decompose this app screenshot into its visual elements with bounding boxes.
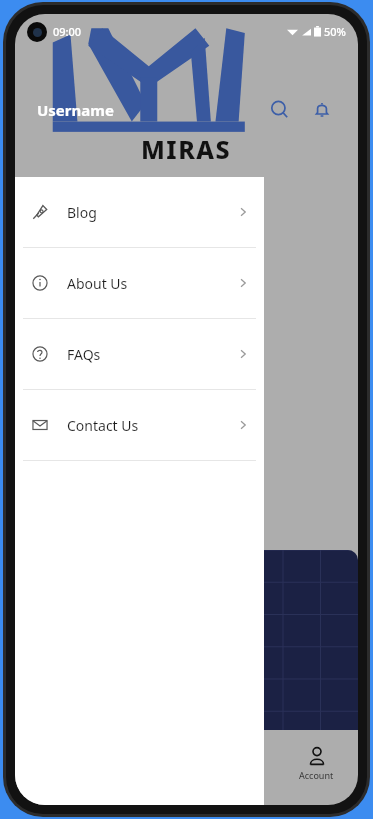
staticText: Username [37,100,114,120]
staticText: Account [299,769,334,781]
button: Blog [15,177,264,805]
button[interactable]: Search [262,92,298,128]
button[interactable]: Account [299,746,334,781]
staticText: MIRAS [141,132,232,166]
button[interactable]: Contact Us [15,390,264,460]
staticText: ACADEMY [120,168,254,202]
button[interactable]: Blog [15,177,264,247]
staticText: 09:00 [53,24,82,39]
staticText: FAQs [67,345,101,364]
button[interactable]: About Us [15,248,264,318]
staticText: Blog [67,203,97,222]
button[interactable]: FAQs [15,319,264,389]
button[interactable]: Notifications [304,92,340,128]
staticText: About Us [67,274,128,293]
staticText: Contact Us [67,416,139,435]
staticText: 50% [324,24,346,39]
